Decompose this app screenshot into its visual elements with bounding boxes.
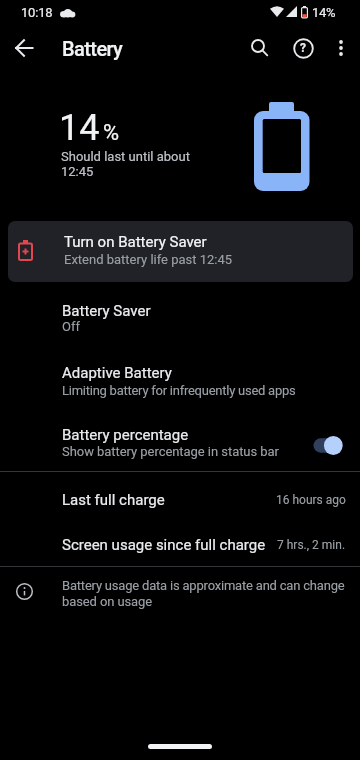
button[interactable] (4, 28, 44, 68)
staticText: Last full charge (62, 491, 165, 509)
staticText: 16 hours ago (276, 493, 346, 507)
staticText: Turn on Battery Saver (64, 233, 207, 251)
staticText: ? (300, 41, 306, 55)
button[interactable]: Battery Saver (0, 294, 360, 352)
staticText: Extend battery life past 12:45 (64, 252, 233, 267)
staticText: Limiting battery for infrequently used a… (62, 383, 296, 398)
staticText: Battery percentage (62, 426, 189, 444)
staticText: 14 (59, 107, 100, 149)
staticText: Show battery percentage in status bar (62, 444, 279, 459)
button[interactable] (240, 28, 280, 68)
staticText: Battery usage data is approximate and ca… (62, 578, 345, 593)
staticText: Battery Saver (62, 302, 151, 320)
button[interactable]: Adaptive Battery (0, 356, 360, 414)
staticText: 7 hrs., 2 min. (277, 538, 346, 552)
staticText: Off (62, 319, 80, 334)
staticText: Adaptive Battery (62, 364, 172, 382)
staticText: % (103, 120, 120, 146)
staticText: 14% (312, 5, 336, 20)
staticText: 12:45 (61, 164, 94, 179)
button[interactable]: Last full charge (0, 477, 360, 522)
button[interactable]: ? (283, 28, 323, 68)
staticText: Battery (62, 37, 123, 60)
button[interactable]: Turn on Battery Saver (8, 221, 353, 282)
button[interactable]: Screen usage since full charge (0, 522, 360, 566)
button[interactable]: Battery percentage (0, 418, 360, 476)
staticText: based on usage (62, 594, 153, 609)
staticText: Should last until about (61, 149, 190, 164)
button[interactable] (327, 28, 355, 68)
staticText: Screen usage since full charge (62, 536, 266, 554)
staticText: 10:18 (21, 5, 53, 20)
